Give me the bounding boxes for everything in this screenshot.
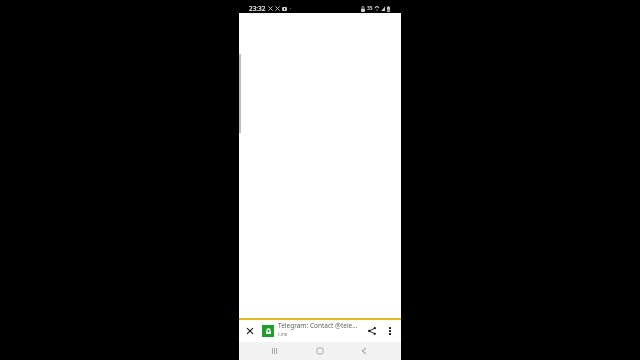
button[interactable]: Home <box>305 342 335 360</box>
button[interactable]: Close <box>239 320 261 342</box>
staticText: 23:32 <box>249 4 266 13</box>
staticText: Telegram: Contact @tele… <box>278 321 358 330</box>
button[interactable]: Recents <box>259 342 289 360</box>
button[interactable]: More options <box>381 320 399 342</box>
staticText: 35 <box>367 5 373 12</box>
button[interactable]: Share <box>362 320 382 342</box>
staticText: t.me <box>278 331 288 337</box>
button[interactable]: Back <box>349 342 379 360</box>
